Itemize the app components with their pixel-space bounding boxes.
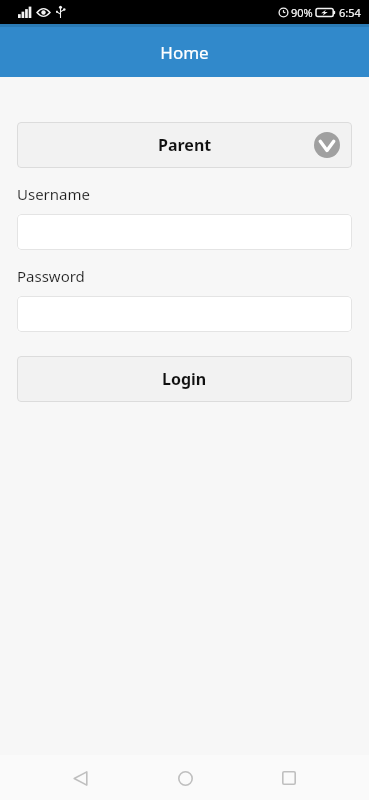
staticText: 6:54 — [339, 5, 361, 20]
button[interactable]: Recent apps — [269, 758, 309, 798]
other: Open dropdown — [314, 132, 340, 158]
button[interactable]: Home — [165, 758, 205, 798]
staticText: Home — [160, 41, 209, 64]
staticText: 90% — [291, 5, 313, 20]
button[interactable] — [17, 296, 352, 332]
staticText: Login — [162, 368, 207, 390]
staticText: Password — [17, 266, 85, 286]
staticText: Parent — [158, 134, 212, 156]
button[interactable] — [17, 214, 352, 250]
button[interactable]: Login — [17, 356, 352, 402]
staticText: Username — [17, 184, 90, 204]
button[interactable]: Parent — [17, 122, 352, 168]
button[interactable]: Back — [60, 758, 100, 798]
